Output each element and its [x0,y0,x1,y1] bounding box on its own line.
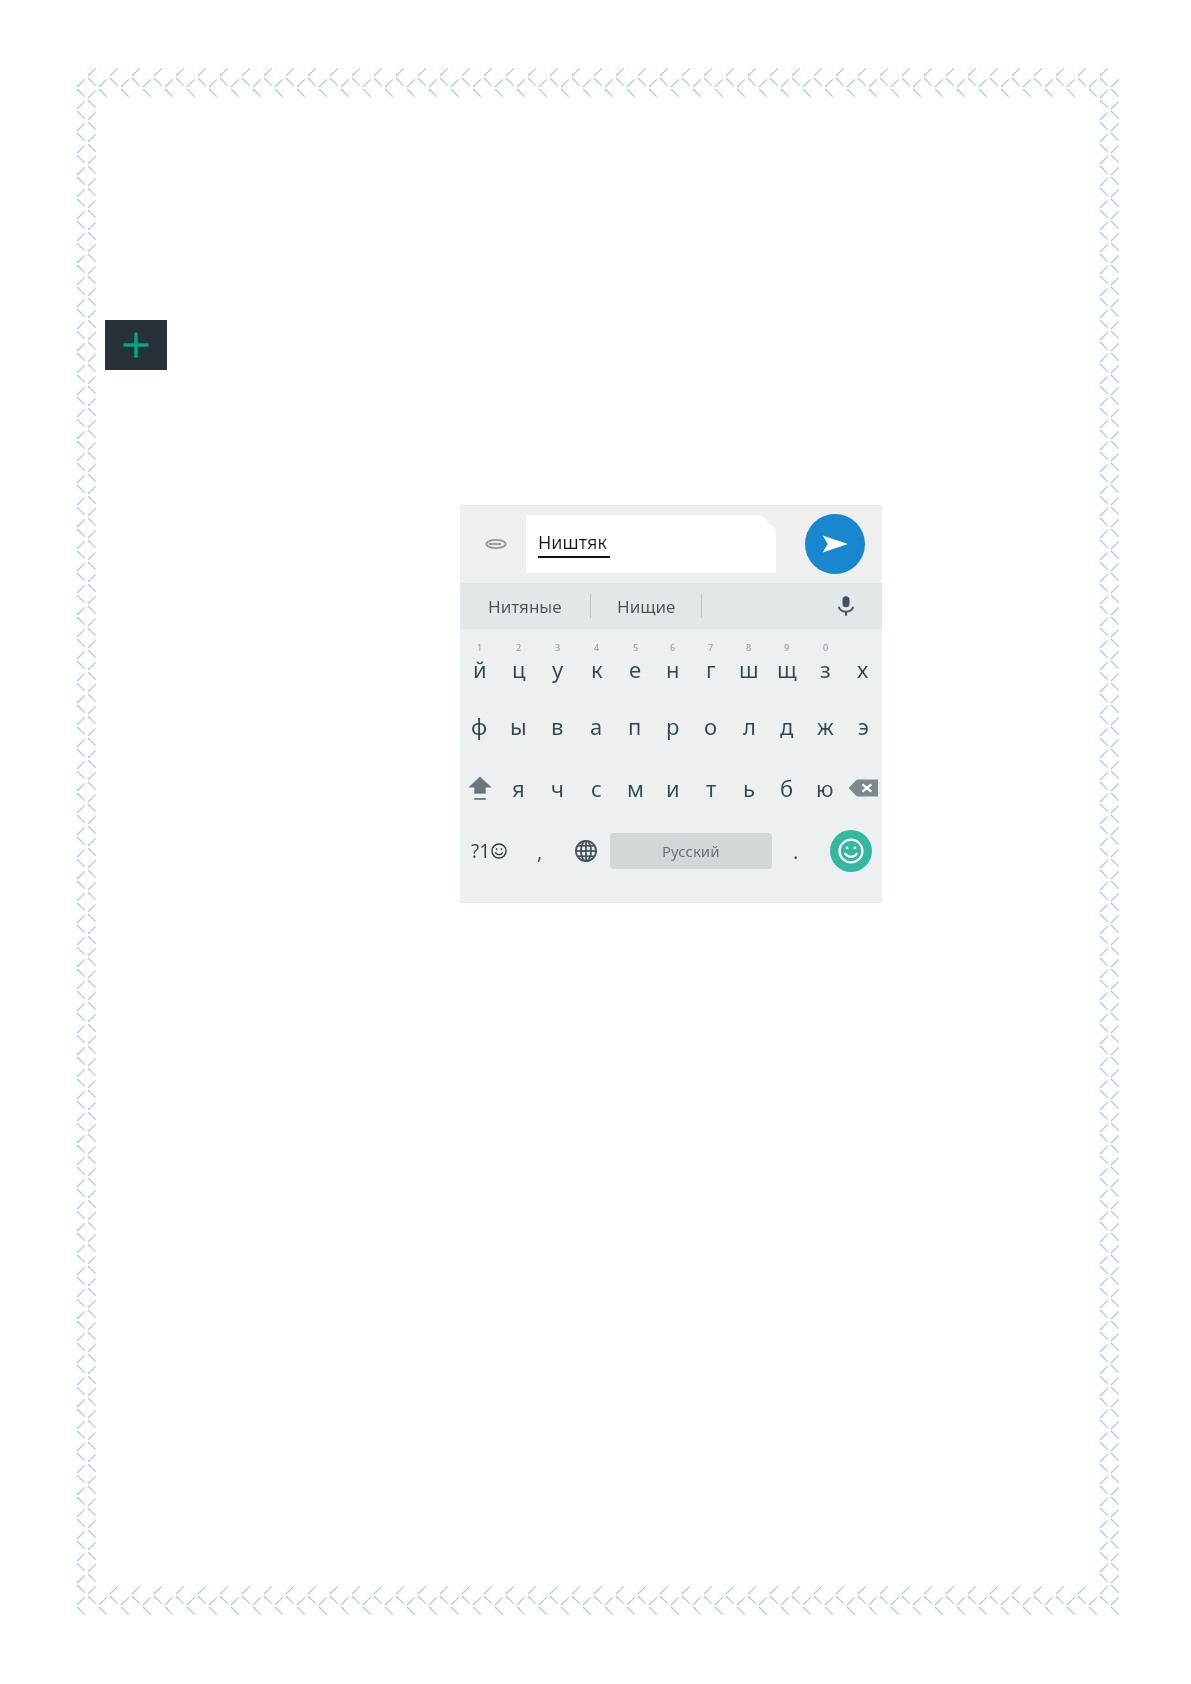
button[interactable]: ч [538,757,577,819]
staticText: г [706,654,716,684]
staticText: н [666,654,680,684]
staticText: к [591,654,603,684]
button[interactable]: Add [105,320,167,370]
staticText: в [551,711,564,741]
staticText: э [858,711,869,741]
staticText: т [706,773,717,803]
staticText: 7 [708,641,714,653]
staticText: ь [743,773,755,803]
staticText: 3 [555,641,561,653]
button[interactable]: в [538,695,577,757]
button[interactable]: 9 [768,629,806,695]
staticText: ж [817,711,834,741]
button[interactable]: л [730,695,768,757]
staticText: у [552,654,564,684]
button[interactable]: Shift [460,757,499,819]
staticText: Ништяк [538,530,607,555]
staticText: ц [512,654,526,684]
button[interactable]: м [616,757,654,819]
button[interactable]: ф [460,695,499,757]
button[interactable]: 7 [692,629,730,695]
button[interactable]: ж [806,695,844,757]
button[interactable]: 0 [806,629,844,695]
button[interactable]: Voice input [826,586,866,626]
button[interactable]: с [577,757,616,819]
staticText: б [780,773,794,803]
button[interactable]: 6 [654,629,692,695]
button[interactable]: . [772,819,820,883]
button[interactable]: Ништяк [526,515,776,573]
staticText: Русский [662,841,720,861]
staticText: 5 [633,641,639,653]
staticText: д [780,711,794,741]
button[interactable]: п [616,695,654,757]
staticText: ч [551,773,564,803]
staticText: 1 [477,641,483,653]
staticText: Нитяные [488,595,562,618]
staticText: , [537,838,543,865]
button[interactable]: т [692,757,730,819]
button[interactable]: э [844,695,882,757]
staticText: 6 [670,641,676,653]
button[interactable]: Нитяные [460,583,590,629]
staticText: 0 [823,641,829,653]
staticText: ?1 [471,838,491,864]
button[interactable]: Backspace [844,757,882,819]
button[interactable]: 8 [730,629,768,695]
button[interactable]: Emoji [820,819,882,883]
staticText: ы [510,711,527,741]
staticText: щ [777,654,797,684]
button[interactable]: х [844,629,882,695]
button[interactable]: Send [805,514,865,574]
staticText: л [743,711,756,741]
button[interactable]: , [518,819,562,883]
staticText: х [857,654,869,684]
staticText: ш [739,654,759,684]
staticText: м [627,773,644,803]
button[interactable]: д [768,695,806,757]
button[interactable]: ю [806,757,844,819]
staticText: е [629,654,642,684]
staticText: 2 [516,641,522,653]
button[interactable]: ы [499,695,538,757]
staticText: . [793,838,799,865]
staticText: а [590,711,603,741]
button[interactable]: а [577,695,616,757]
button[interactable]: 5 [616,629,654,695]
staticText: 4 [594,641,600,653]
button[interactable]: Change language [562,819,610,883]
staticText: с [591,773,602,803]
button[interactable]: я [499,757,538,819]
staticText: Нищие [617,595,676,618]
staticText: п [628,711,642,741]
button[interactable]: р [654,695,692,757]
staticText: 9 [784,641,790,653]
button[interactable]: Нищие [591,583,701,629]
staticText: р [666,711,680,741]
button[interactable]: 4 [577,629,616,695]
button[interactable]: о [692,695,730,757]
button[interactable]: 1 [460,629,499,695]
staticText: ю [816,773,834,803]
button[interactable]: ь [730,757,768,819]
button[interactable]: 2 [499,629,538,695]
button[interactable]: ?1 [460,819,518,883]
button[interactable]: б [768,757,806,819]
staticText: и [666,773,680,803]
staticText: й [473,654,487,684]
staticText: я [512,773,525,803]
button[interactable]: Attach [474,522,518,566]
button[interactable]: и [654,757,692,819]
staticText: з [820,654,831,684]
staticText: о [704,711,718,741]
button[interactable]: Русский [610,833,772,869]
button[interactable]: 3 [538,629,577,695]
staticText: ф [471,711,488,741]
staticText: 8 [746,641,752,653]
